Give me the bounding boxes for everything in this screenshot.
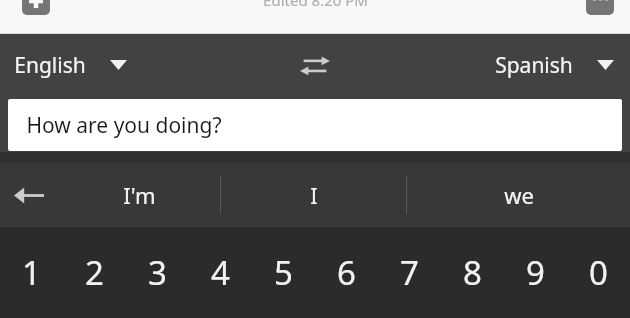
button[interactable]: 9	[504, 227, 567, 318]
staticText: 7	[400, 250, 419, 295]
staticText: Spanish	[495, 51, 573, 80]
staticText: 8	[463, 250, 482, 295]
button[interactable]: How are you doing?	[8, 99, 622, 151]
button[interactable]: Spanish	[483, 39, 630, 91]
staticText: 3	[148, 250, 167, 295]
button[interactable]: Add	[20, 0, 52, 17]
staticText: 2	[85, 250, 104, 295]
button[interactable]: 3	[126, 227, 189, 318]
staticText: How are you doing?	[26, 111, 222, 140]
button[interactable]: I'm	[58, 163, 220, 227]
button[interactable]: 5	[252, 227, 315, 318]
staticText: I'm	[123, 180, 156, 210]
button[interactable]: 0	[567, 227, 630, 318]
staticText: English	[14, 51, 86, 80]
button[interactable]: 8	[441, 227, 504, 318]
staticText: Edited 8:20 PM	[263, 0, 368, 10]
staticText: we	[504, 180, 534, 210]
staticText: 6	[337, 250, 356, 295]
staticText: 1	[22, 250, 41, 295]
button[interactable]: Back	[0, 163, 58, 227]
button[interactable]: 2	[63, 227, 126, 318]
button[interactable]: 4	[189, 227, 252, 318]
button[interactable]: More options	[584, 0, 616, 17]
staticText: 4	[211, 250, 230, 295]
staticText: 5	[274, 250, 293, 295]
button[interactable]: 1	[0, 227, 63, 318]
staticText: I	[310, 180, 318, 210]
button[interactable]: Swap languages	[290, 40, 340, 90]
staticText: 9	[526, 250, 545, 295]
button[interactable]: English	[0, 39, 139, 91]
button[interactable]: 7	[378, 227, 441, 318]
staticText: 0	[589, 250, 608, 295]
button[interactable]: 6	[315, 227, 378, 318]
button[interactable]: we	[407, 163, 630, 227]
button[interactable]: I	[221, 163, 406, 227]
